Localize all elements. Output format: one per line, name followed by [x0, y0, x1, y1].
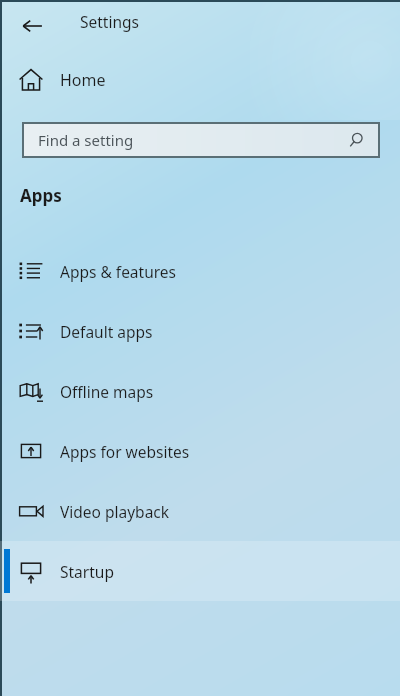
- staticText: Startup: [60, 561, 114, 582]
- staticText: Offline maps: [60, 381, 154, 402]
- staticText: Apps for websites: [60, 441, 190, 462]
- button[interactable]: Apps for websites: [0, 421, 400, 481]
- staticText: Find a setting: [38, 130, 134, 150]
- button[interactable]: Find a setting: [24, 124, 378, 156]
- button[interactable]: Apps & features: [0, 241, 400, 301]
- staticText: Apps & features: [60, 261, 177, 282]
- staticText: Settings: [80, 11, 139, 32]
- button[interactable]: Startup: [0, 541, 400, 601]
- button[interactable]: Video playback: [0, 481, 400, 541]
- staticText: Default apps: [60, 321, 153, 342]
- button[interactable]: Home: [0, 52, 400, 108]
- button[interactable]: Default apps: [0, 301, 400, 361]
- button[interactable]: Back: [14, 8, 50, 44]
- staticText: Home: [60, 69, 106, 91]
- staticText: Apps: [20, 184, 62, 207]
- staticText: Video playback: [60, 501, 170, 522]
- button[interactable]: Offline maps: [0, 361, 400, 421]
